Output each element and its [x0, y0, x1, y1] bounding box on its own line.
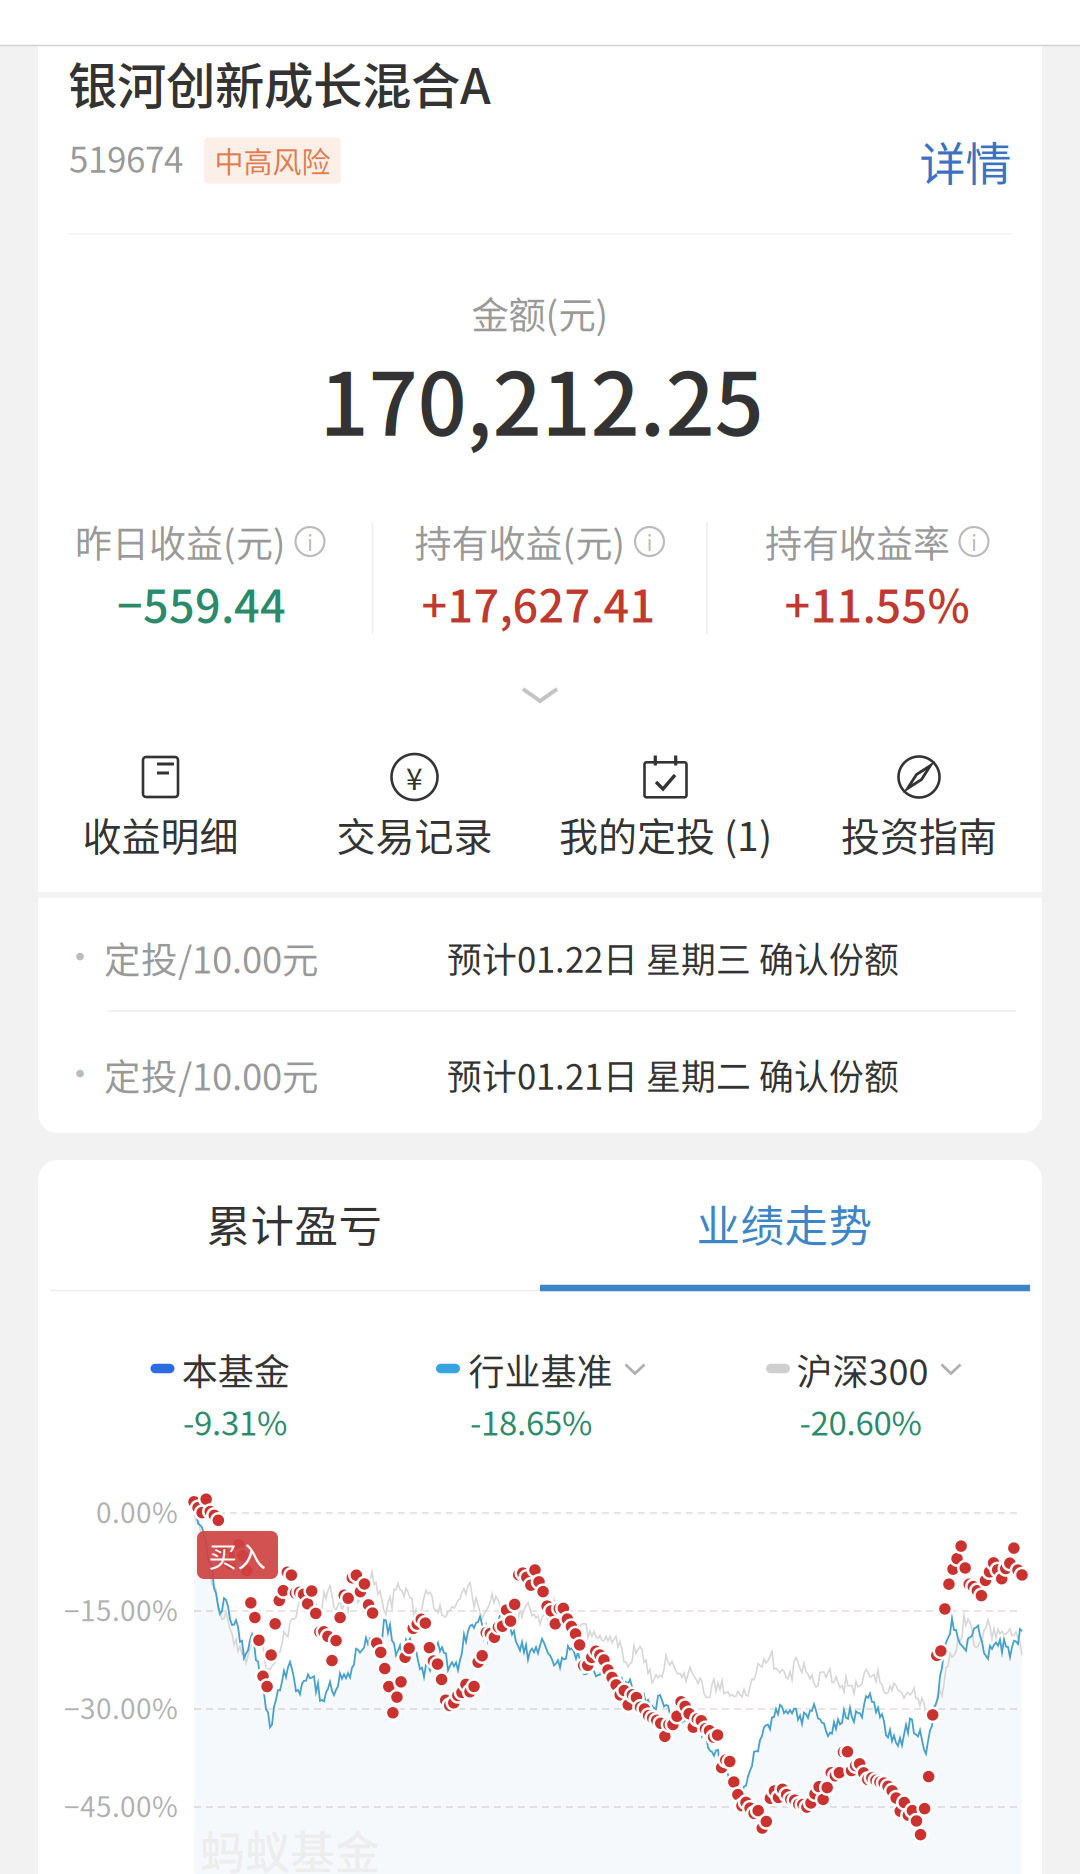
staticText: • — [62, 929, 98, 981]
button[interactable]: 说明 — [634, 526, 664, 556]
staticText: i — [307, 526, 313, 557]
staticText: −559.44 — [117, 570, 286, 636]
staticText: 业绩走势 — [696, 1191, 872, 1254]
staticText: −30.00% — [64, 1687, 178, 1727]
staticText: 行业基准 — [468, 1343, 612, 1395]
staticText: −15.00% — [64, 1589, 178, 1629]
button[interactable]: 收益明细 — [35, 739, 285, 879]
staticText: 投资指南 — [841, 806, 997, 862]
button[interactable]: 说明 — [295, 526, 325, 556]
staticText: 沪深300 — [796, 1343, 928, 1395]
button[interactable]: 详情 — [905, 123, 1025, 197]
staticText: • — [62, 1046, 98, 1098]
staticText: 中高风险 — [214, 139, 330, 181]
staticText: 519674 — [69, 132, 183, 183]
staticText: ¥ — [406, 755, 423, 799]
staticText: 收益明细 — [82, 806, 238, 862]
staticText: 持有收益率 — [765, 515, 950, 568]
staticText: 持有收益(元) — [414, 515, 625, 568]
staticText: 详情 — [919, 127, 1011, 194]
staticText: i — [971, 526, 977, 557]
button[interactable]: 沪深300 — [796, 1339, 961, 1399]
staticText: 昨日收益(元) — [75, 515, 286, 568]
staticText: 定投/10.00元 — [104, 931, 319, 984]
button[interactable]: 行业基准 — [468, 1339, 645, 1399]
button[interactable]: ¥ — [289, 739, 539, 879]
staticText: 金额(元) — [471, 286, 608, 340]
staticText: 定投/10.00元 — [104, 1048, 319, 1101]
staticText: -20.60% — [799, 1397, 921, 1445]
staticText: −45.00% — [64, 1785, 178, 1825]
button[interactable]: 展开更多 — [480, 665, 600, 725]
button[interactable]: 本基金 — [182, 1339, 290, 1399]
staticText: i — [646, 526, 652, 557]
button[interactable]: 说明 — [959, 526, 989, 556]
staticText: 预计01.21日 星期二 确认份额 — [447, 1049, 899, 1100]
staticText: 我的定投 (1) — [559, 806, 772, 862]
staticText: -9.31% — [183, 1397, 287, 1445]
button[interactable]: 业绩走势 — [533, 1158, 1035, 1288]
staticText: +17,627.41 — [421, 570, 655, 636]
staticText: 蚂蚁基金 — [200, 1817, 380, 1874]
staticText: 交易记录 — [336, 806, 492, 862]
staticText: -18.65% — [470, 1397, 592, 1445]
button[interactable]: • — [38, 1017, 1042, 1131]
staticText: 0.00% — [96, 1491, 178, 1531]
staticText: 本基金 — [182, 1343, 290, 1395]
staticText: 预计01.22日 星期三 确认份额 — [447, 932, 899, 983]
staticText: 银河创新成长混合A — [68, 47, 491, 118]
button[interactable]: 投资指南 — [794, 739, 1044, 879]
button[interactable]: • — [38, 900, 1042, 1014]
button[interactable]: 累计盈亏 — [43, 1158, 545, 1288]
staticText: 170,212.25 — [319, 335, 763, 461]
staticText: +11.55% — [784, 570, 969, 636]
button[interactable]: 我的定投 (1) — [540, 739, 790, 879]
staticText: 买入 — [208, 1534, 266, 1576]
staticText: 累计盈亏 — [206, 1191, 382, 1254]
